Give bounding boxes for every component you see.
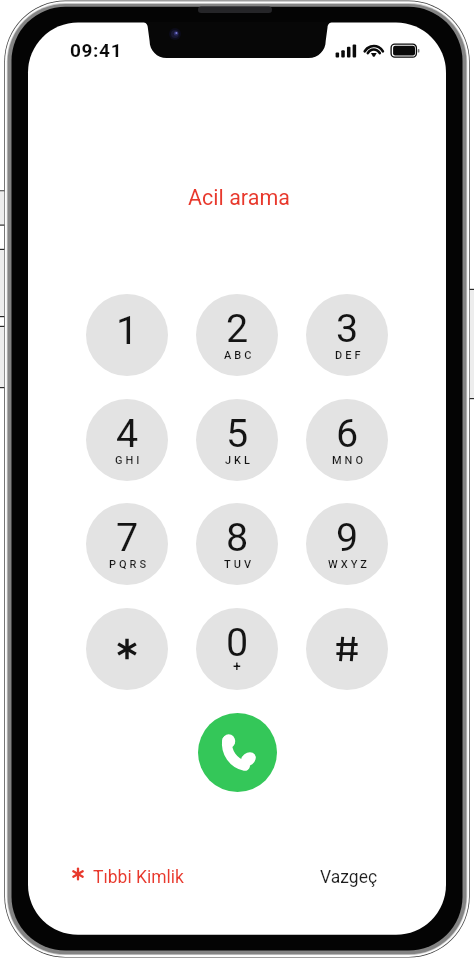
staticText: 0 <box>226 619 249 665</box>
button[interactable]: # <box>306 608 388 690</box>
staticText: JKL <box>225 454 254 467</box>
staticText: 9 <box>336 514 359 560</box>
staticText: 4 <box>116 410 139 456</box>
staticText: DEF <box>335 349 364 362</box>
staticText: MNO <box>332 454 367 467</box>
staticText: 2 <box>226 305 249 351</box>
button[interactable]: 1 <box>86 294 168 376</box>
button[interactable]: 9 <box>306 503 388 585</box>
staticText: ABC <box>224 349 255 362</box>
button[interactable]: 5 <box>196 399 278 481</box>
button[interactable]: Vazgeç <box>320 867 378 888</box>
staticText: 3 <box>336 305 359 351</box>
button[interactable]: * <box>86 608 168 690</box>
staticText: 5 <box>226 410 249 456</box>
staticText: Acil arama <box>2 185 474 210</box>
staticText: 7 <box>116 514 139 560</box>
button[interactable]: Tıbbi Kimlik <box>69 867 184 888</box>
staticText: GHI <box>115 454 143 467</box>
staticText: Vazgeç <box>320 867 378 888</box>
staticText: 6 <box>336 410 359 456</box>
staticText: 09:41 <box>70 39 123 61</box>
button[interactable]: 3 <box>306 294 388 376</box>
button[interactable]: 4 <box>86 399 168 481</box>
staticText: Tıbbi Kimlik <box>93 867 184 888</box>
button[interactable]: 6 <box>306 399 388 481</box>
button[interactable]: 0 <box>196 608 278 690</box>
button[interactable]: 2 <box>196 294 278 376</box>
button[interactable]: 8 <box>196 503 278 585</box>
staticText: TUV <box>224 558 255 571</box>
staticText: 1 <box>116 307 139 353</box>
button[interactable]: Ara <box>198 713 277 792</box>
staticText: 8 <box>226 514 249 560</box>
staticText: + <box>233 658 241 674</box>
staticText: WXYZ <box>328 558 370 571</box>
staticText: PQRS <box>109 558 150 571</box>
button[interactable]: 7 <box>86 503 168 585</box>
